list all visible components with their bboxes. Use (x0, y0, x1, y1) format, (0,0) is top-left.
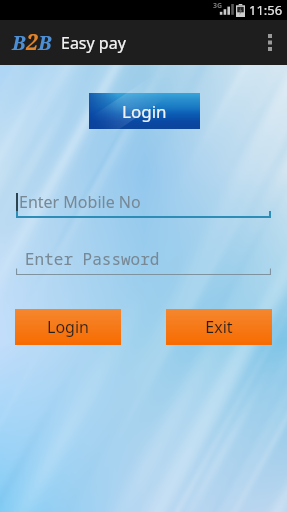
staticText: B (38, 29, 52, 56)
staticText: Easy pay (61, 32, 126, 54)
button[interactable]: Enter Mobile No (16, 186, 271, 218)
staticText: Enter Password (25, 248, 160, 270)
staticText: Enter Mobile No (19, 191, 141, 213)
button[interactable]: More options (253, 20, 287, 65)
button[interactable]: Enter Password (16, 243, 271, 275)
staticText: Login (122, 100, 167, 123)
button[interactable]: Exit (166, 309, 272, 345)
button[interactable]: Login (89, 93, 200, 129)
staticText: 2 (26, 28, 38, 57)
staticText: Exit (205, 316, 233, 338)
staticText: 3G (213, 1, 223, 11)
staticText: Login (47, 316, 89, 338)
button[interactable]: Login (15, 309, 121, 345)
staticText: B (12, 29, 26, 56)
staticText: 11:56 (249, 1, 283, 19)
